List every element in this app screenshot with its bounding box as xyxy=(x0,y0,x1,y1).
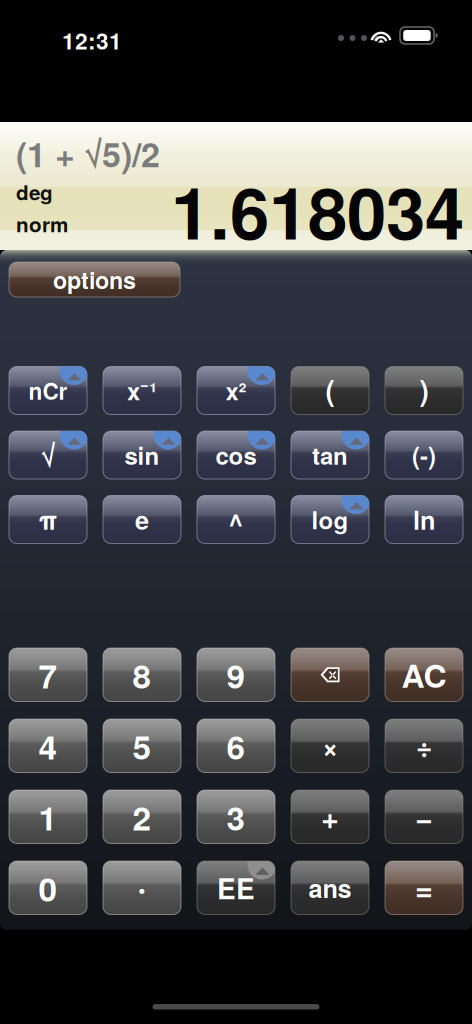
staticText: √ xyxy=(40,435,55,475)
staticText: × xyxy=(322,726,338,766)
button[interactable]: 6 xyxy=(197,719,275,772)
staticText: ^ xyxy=(228,503,244,542)
staticText: 0 xyxy=(38,864,57,912)
staticText: e xyxy=(135,501,149,538)
button[interactable]: (-) xyxy=(385,431,463,479)
button[interactable]: = xyxy=(385,861,463,914)
button[interactable]: options xyxy=(9,262,180,297)
button[interactable]: sin xyxy=(103,431,181,479)
staticText: 6 xyxy=(226,722,245,770)
staticText: ln xyxy=(413,501,435,538)
button[interactable]: 8 xyxy=(103,648,181,701)
button[interactable]: 5 xyxy=(103,719,181,772)
button[interactable]: log xyxy=(291,495,369,543)
button[interactable]: ÷ xyxy=(385,719,463,772)
staticText: 1 xyxy=(38,793,57,841)
button[interactable]: 2 xyxy=(103,790,181,843)
staticText: cos xyxy=(215,438,256,472)
button[interactable]: e xyxy=(103,495,181,543)
staticText: 3 xyxy=(226,793,245,841)
staticText: ) xyxy=(419,369,428,410)
staticText: (-) xyxy=(412,438,436,472)
staticText: tan xyxy=(312,438,348,472)
button[interactable]: 4 xyxy=(9,719,87,772)
staticText: = xyxy=(415,866,433,910)
button[interactable]: × xyxy=(291,719,369,772)
staticText: ÷ xyxy=(416,726,432,766)
staticText: options xyxy=(53,263,136,296)
staticText: (1 + √5)/2 xyxy=(16,129,160,178)
button[interactable]: Delete xyxy=(291,648,369,701)
staticText: log xyxy=(311,502,348,537)
staticText: 2 xyxy=(132,793,151,841)
button[interactable]: 7 xyxy=(9,648,87,701)
staticText: nCr xyxy=(28,374,67,407)
staticText: 4 xyxy=(38,722,57,770)
staticText: EE xyxy=(217,868,255,908)
staticText: sin xyxy=(124,438,159,472)
staticText: deg xyxy=(16,177,53,207)
button[interactable]: EE xyxy=(197,861,275,914)
button[interactable]: √ xyxy=(9,431,87,479)
button[interactable]: nCr xyxy=(9,366,87,414)
staticText: − xyxy=(415,795,433,839)
button[interactable]: 0 xyxy=(9,861,87,914)
button[interactable]: x⁻¹ xyxy=(103,366,181,414)
button[interactable]: x² xyxy=(197,366,275,414)
staticText: 9 xyxy=(226,651,245,699)
staticText: · xyxy=(137,861,147,910)
button[interactable]: 9 xyxy=(197,648,275,701)
staticText: x⁻¹ xyxy=(127,373,157,408)
button[interactable]: ^ xyxy=(197,495,275,543)
button[interactable]: − xyxy=(385,790,463,843)
button[interactable]: 3 xyxy=(197,790,275,843)
button[interactable]: + xyxy=(291,790,369,843)
staticText: 8 xyxy=(132,651,151,699)
button[interactable]: ) xyxy=(385,366,463,414)
button[interactable]: AC xyxy=(385,648,463,701)
button[interactable]: tan xyxy=(291,431,369,479)
staticText: AC xyxy=(401,652,446,698)
button[interactable]: ans xyxy=(291,861,369,914)
button[interactable]: · xyxy=(103,861,181,914)
staticText: ( xyxy=(325,369,334,410)
button[interactable]: 1 xyxy=(9,790,87,843)
staticText: 7 xyxy=(38,651,57,699)
button[interactable]: ln xyxy=(385,495,463,543)
staticText: norm xyxy=(16,209,68,239)
staticText: + xyxy=(321,795,339,839)
staticText: π xyxy=(38,501,57,538)
button[interactable]: ( xyxy=(291,366,369,414)
button[interactable]: π xyxy=(9,495,87,543)
button[interactable]: cos xyxy=(197,431,275,479)
staticText: 1.618034 xyxy=(171,160,464,261)
staticText: 12:31 xyxy=(62,24,122,56)
staticText: ans xyxy=(308,870,351,906)
staticText: 5 xyxy=(132,722,151,770)
staticText: x² xyxy=(225,373,246,408)
